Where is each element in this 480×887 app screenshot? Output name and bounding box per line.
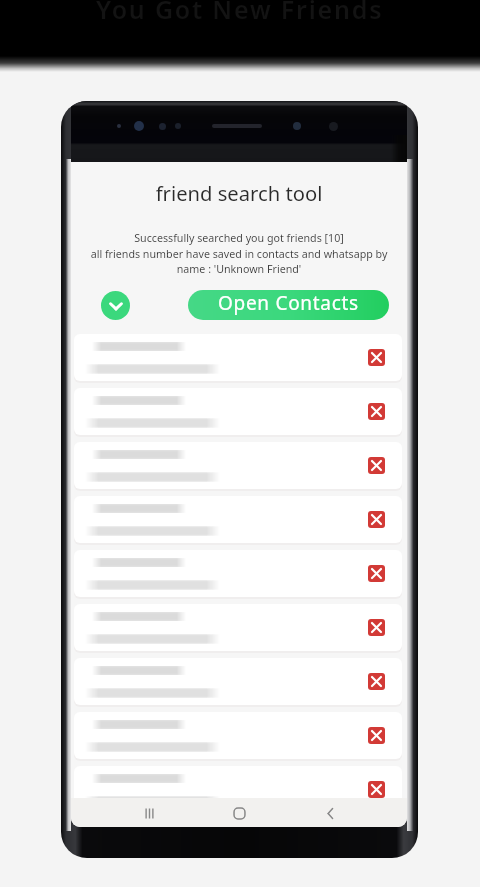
button[interactable]: Delete [368, 457, 385, 474]
staticText: Successfully searched you got friends [1… [72, 231, 406, 276]
button[interactable]: Delete [74, 496, 402, 543]
button[interactable]: Delete [74, 712, 402, 759]
button[interactable]: Home [226, 800, 252, 826]
button[interactable]: Delete [74, 334, 402, 381]
button[interactable]: Back [317, 800, 343, 826]
button[interactable]: Delete [368, 781, 385, 798]
button[interactable]: Delete [368, 349, 385, 366]
staticText: Open Contacts [218, 290, 359, 316]
button[interactable]: Delete [74, 604, 402, 651]
staticText: You Got New Friends [96, 0, 384, 26]
button[interactable]: Open Contacts [188, 290, 389, 320]
button[interactable]: Delete [74, 658, 402, 705]
button[interactable]: Delete [74, 442, 402, 489]
button[interactable]: Delete [74, 388, 402, 435]
button[interactable]: Delete [368, 619, 385, 636]
staticText: friend search tool [71, 179, 407, 207]
button[interactable]: Delete [74, 766, 402, 813]
button[interactable]: Delete [368, 727, 385, 744]
button[interactable]: Delete [368, 511, 385, 528]
button[interactable]: Recent apps [136, 800, 162, 826]
button[interactable]: Delete [368, 673, 385, 690]
button[interactable]: Delete [74, 550, 402, 597]
button[interactable]: Delete [368, 403, 385, 420]
button[interactable]: Delete [368, 565, 385, 582]
button[interactable]: Collapse [101, 291, 130, 320]
